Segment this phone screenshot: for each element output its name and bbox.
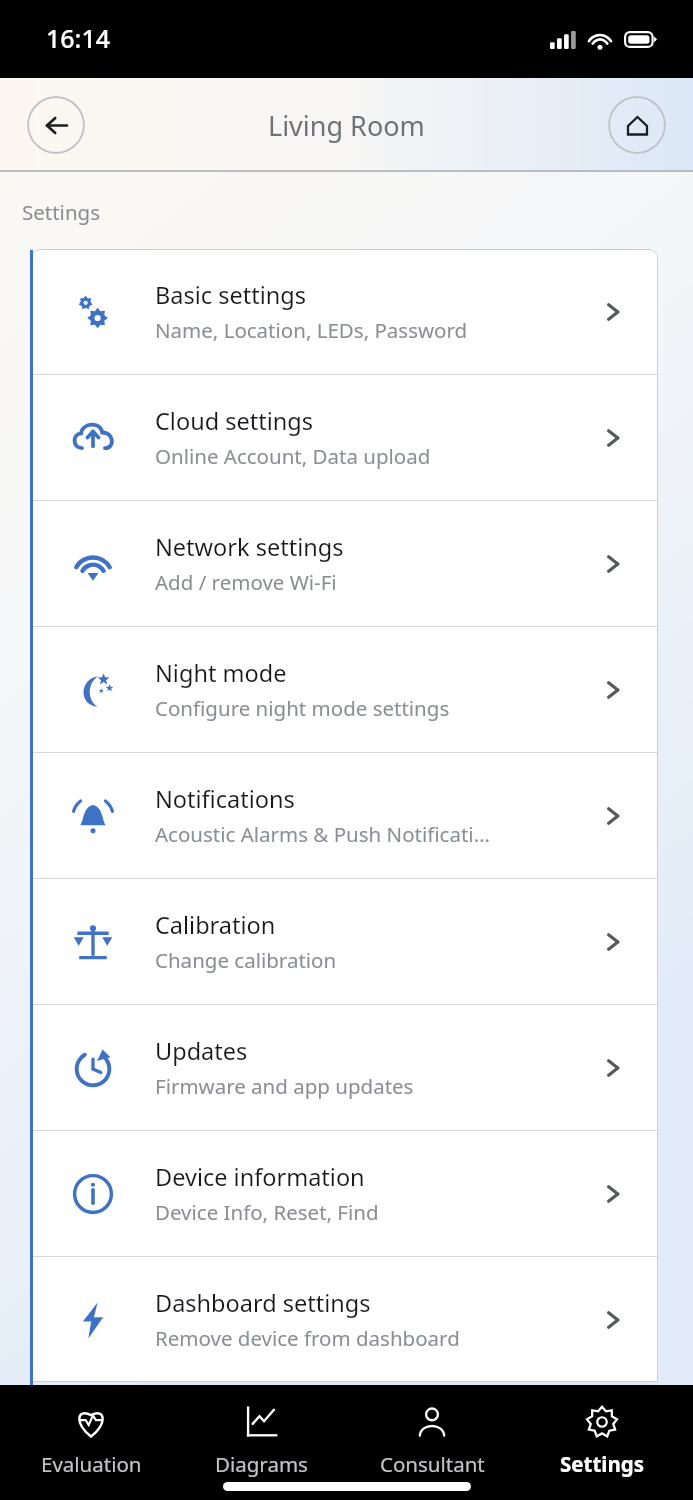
staticText: 16:14 bbox=[46, 21, 111, 55]
staticText: Device information bbox=[155, 1161, 365, 1193]
button[interactable]: Basic settings bbox=[31, 249, 658, 374]
staticText: Name, Location, LEDs, Password bbox=[155, 316, 468, 344]
staticText: Add / remove Wi-Fi bbox=[155, 568, 337, 596]
staticText: Settings bbox=[560, 1450, 645, 1478]
staticText: Network settings bbox=[155, 531, 344, 563]
staticText: Change calibration bbox=[155, 946, 337, 974]
button[interactable]: Cloud settings bbox=[31, 375, 658, 500]
button[interactable]: Notifications bbox=[31, 753, 658, 878]
staticText: Updates bbox=[155, 1035, 248, 1067]
staticText: Firmware and app updates bbox=[155, 1072, 414, 1100]
staticText: Basic settings bbox=[155, 279, 306, 311]
button[interactable]: Evaluation bbox=[11, 1385, 171, 1500]
staticText: Calibration bbox=[155, 909, 276, 941]
button[interactable]: Settings bbox=[522, 1385, 682, 1500]
staticText: Diagrams bbox=[215, 1450, 308, 1478]
staticText: Settings bbox=[22, 198, 101, 226]
staticText: Night mode bbox=[155, 657, 287, 689]
button[interactable]: Calibration bbox=[31, 879, 658, 1004]
staticText: Consultant bbox=[380, 1450, 485, 1478]
staticText: Acoustic Alarms & Push Notificati… bbox=[155, 820, 490, 848]
button[interactable]: Back bbox=[27, 96, 85, 154]
button[interactable]: Dashboard settings bbox=[31, 1257, 658, 1382]
staticText: Remove device from dashboard bbox=[155, 1324, 460, 1352]
staticText: Evaluation bbox=[41, 1450, 142, 1478]
staticText: Living Room bbox=[268, 107, 425, 144]
button[interactable]: Diagrams bbox=[181, 1385, 341, 1500]
staticText: Online Account, Data upload bbox=[155, 442, 431, 470]
button[interactable]: Consultant bbox=[352, 1385, 512, 1500]
staticText: Cloud settings bbox=[155, 405, 313, 437]
button[interactable]: Night mode bbox=[31, 627, 658, 752]
staticText: Dashboard settings bbox=[155, 1287, 371, 1319]
staticText: Device Info, Reset, Find bbox=[155, 1198, 379, 1226]
button[interactable]: Device information bbox=[31, 1131, 658, 1256]
button[interactable]: Home bbox=[608, 96, 666, 154]
staticText: Configure night mode settings bbox=[155, 694, 450, 722]
staticText: Notifications bbox=[155, 783, 295, 815]
button[interactable]: Network settings bbox=[31, 501, 658, 626]
button[interactable]: Updates bbox=[31, 1005, 658, 1130]
